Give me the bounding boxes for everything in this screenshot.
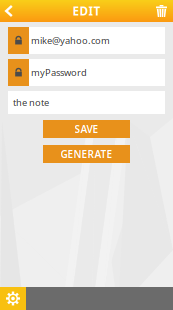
button[interactable]: Settings (0, 287, 26, 310)
staticText: EDIT (72, 3, 100, 19)
staticText: GENERATE (60, 147, 112, 161)
staticText: the note (13, 96, 49, 109)
button[interactable]: SAVE (43, 120, 130, 138)
staticText: mike@yahoo.com (31, 34, 110, 47)
staticText: myPassword (31, 66, 87, 79)
staticText: SAVE (74, 122, 98, 136)
button[interactable]: Delete (149, 0, 173, 22)
button[interactable]: Back (0, 0, 20, 22)
button[interactable]: GENERATE (43, 145, 130, 163)
